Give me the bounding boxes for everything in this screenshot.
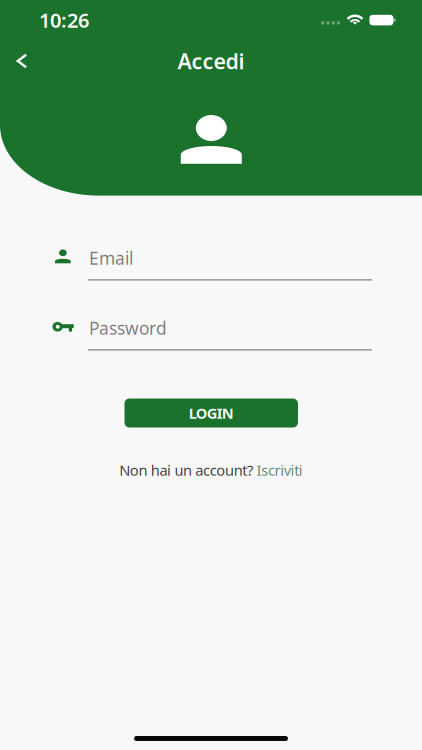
staticText: Accedi (177, 47, 244, 75)
staticText: Non hai un account? (119, 460, 257, 480)
button[interactable]: Back (0, 41, 44, 81)
staticText: Password (89, 316, 167, 339)
button[interactable]: LOGIN (124, 398, 298, 427)
staticText: LOGIN (189, 403, 234, 423)
button[interactable]: Email (52, 243, 372, 281)
button[interactable]: Password (52, 313, 372, 351)
staticText: Iscriviti (257, 460, 303, 480)
button[interactable]: Non hai un account? (61, 461, 361, 479)
staticText: Email (89, 246, 133, 269)
staticText: 10:26 (39, 7, 89, 33)
